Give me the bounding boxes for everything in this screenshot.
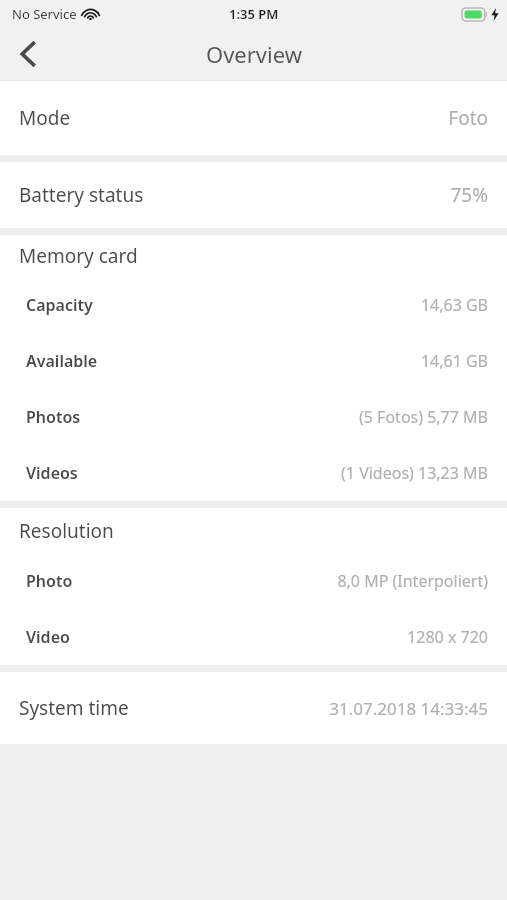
staticText: 1280 x 720: [407, 626, 488, 648]
staticText: 75%: [450, 182, 488, 208]
button[interactable]: Photos: [0, 389, 507, 445]
staticText: (1 Videos) 13,23 MB: [341, 462, 488, 484]
staticText: 8,0 MP (Interpoliert): [337, 570, 488, 592]
staticText: Overview: [206, 39, 302, 69]
button[interactable]: System time: [0, 672, 507, 744]
staticText: System time: [19, 695, 129, 721]
staticText: Foto: [448, 105, 488, 131]
button[interactable]: Mode: [0, 81, 507, 155]
staticText: Photos: [26, 406, 81, 428]
staticText: 31.07.2018 14:33:45: [329, 697, 488, 720]
staticText: Available: [26, 350, 98, 372]
staticText: Mode: [19, 105, 71, 131]
button[interactable]: Available: [0, 333, 507, 389]
staticText: Memory card: [19, 243, 138, 269]
staticText: Photo: [26, 570, 73, 592]
button[interactable]: Battery status: [0, 162, 507, 228]
button[interactable]: Videos: [0, 445, 507, 501]
staticText: Capacity: [26, 294, 93, 316]
button[interactable]: Back: [0, 28, 56, 80]
staticText: 14,61 GB: [420, 350, 488, 372]
button[interactable]: Capacity: [0, 277, 507, 333]
staticText: Video: [26, 626, 70, 648]
staticText: Battery status: [19, 182, 144, 208]
button[interactable]: Photo: [0, 553, 507, 609]
staticText: (5 Fotos) 5,77 MB: [359, 406, 488, 428]
staticText: No Service: [12, 5, 77, 23]
staticText: 1:35 PM: [229, 5, 279, 23]
button[interactable]: Video: [0, 609, 507, 665]
staticText: Videos: [26, 462, 78, 484]
staticText: 14,63 GB: [420, 294, 488, 316]
staticText: Resolution: [19, 518, 114, 544]
